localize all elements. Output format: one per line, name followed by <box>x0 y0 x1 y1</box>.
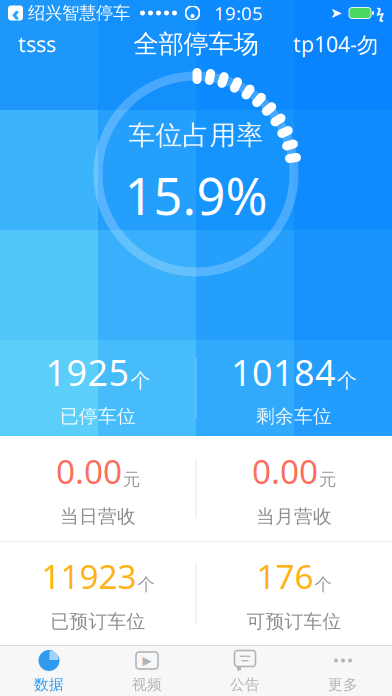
staticText: ‹ <box>11 0 19 26</box>
button[interactable]: Back to 绍兴智慧停车 <box>8 0 130 26</box>
staticText: tp104-勿 <box>293 30 378 58</box>
staticText: 11923 <box>41 554 136 598</box>
staticText: 已停车位 <box>60 405 136 428</box>
staticText: 个 <box>314 574 331 595</box>
staticText: 当日营收 <box>60 505 136 528</box>
staticText: 个 <box>130 368 150 393</box>
button[interactable]: 数据 <box>0 646 98 696</box>
staticText: 可预订车位 <box>246 610 341 633</box>
staticText: ➤ <box>330 5 342 21</box>
staticText: 当月营收 <box>256 505 332 528</box>
staticText: 公告 <box>230 675 260 693</box>
button[interactable]: tsss <box>14 24 60 64</box>
staticText: 剩余车位 <box>256 405 332 428</box>
staticText: 15.9% <box>124 162 267 229</box>
staticText: 个 <box>337 368 357 393</box>
button[interactable]: tp104-勿 <box>293 24 378 64</box>
staticText: 个 <box>137 574 154 595</box>
button[interactable]: 公告 <box>196 646 294 696</box>
button[interactable]: ▶ <box>98 646 196 696</box>
staticText: 数据 <box>34 675 64 693</box>
staticText: 更多 <box>328 675 358 693</box>
staticText: 1925 <box>45 348 129 396</box>
button[interactable]: 更多 <box>294 646 392 696</box>
staticText: 车位占用率 <box>128 119 263 152</box>
staticText: 元 <box>123 469 140 490</box>
staticText: 绍兴智慧停车 <box>28 2 130 24</box>
staticText: tsss <box>18 30 56 58</box>
staticText: 全部停车场 <box>133 28 258 59</box>
staticText: 元 <box>319 469 336 490</box>
staticText: 0.00 <box>252 449 318 493</box>
staticText: 视频 <box>132 675 162 693</box>
staticText: ▶ <box>142 654 151 667</box>
staticText: ϟ <box>376 3 384 23</box>
staticText: 已预订车位 <box>50 610 145 633</box>
staticText: 10184 <box>231 348 336 396</box>
staticText: 19:05 <box>214 1 263 25</box>
staticText: 0.00 <box>56 449 122 493</box>
staticText: 176 <box>256 554 313 598</box>
